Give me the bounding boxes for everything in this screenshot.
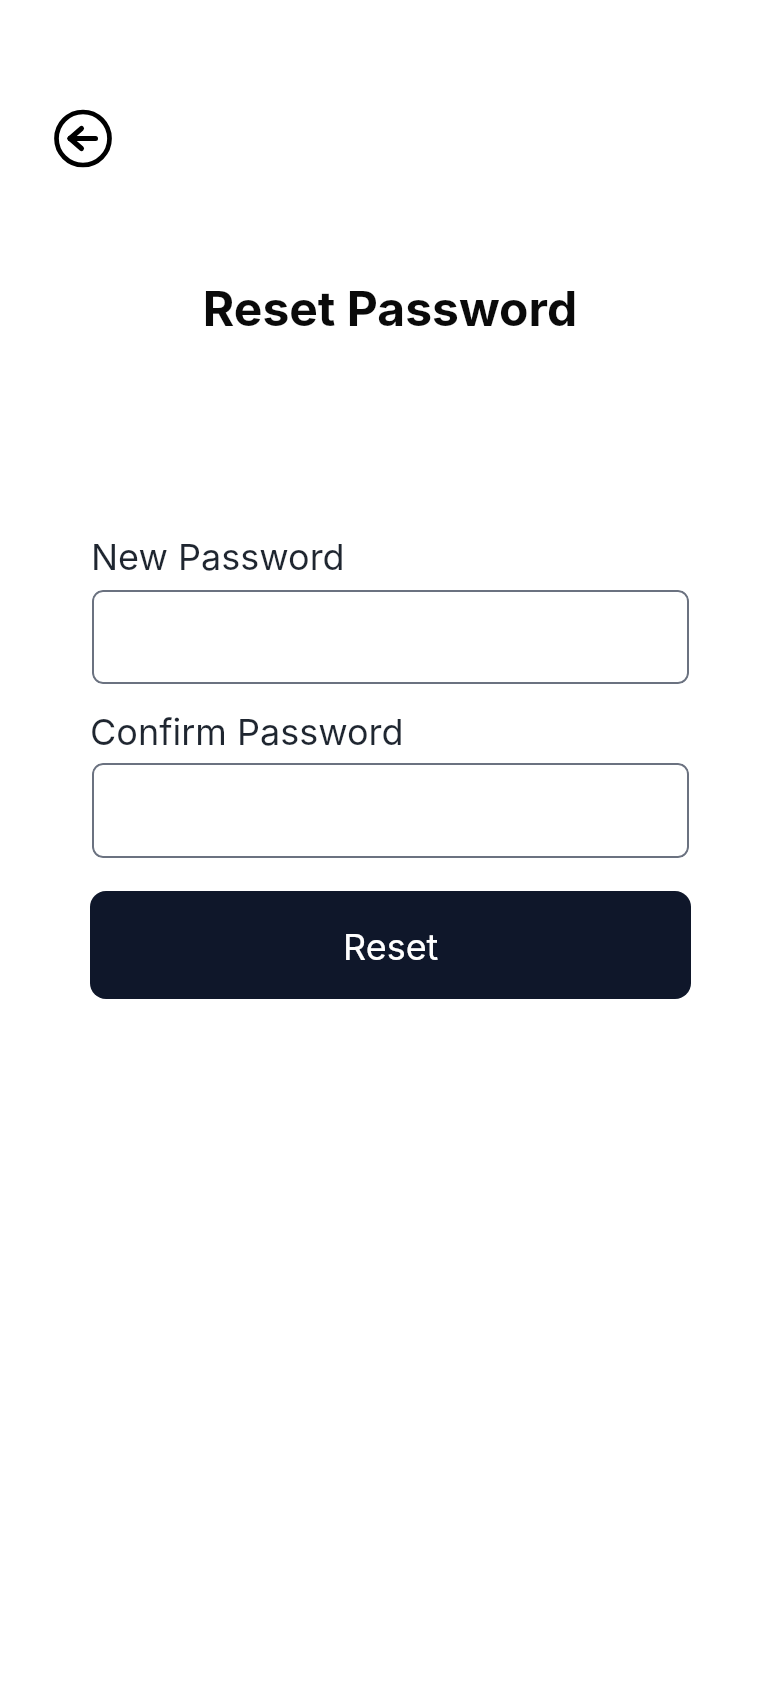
button[interactable] (54, 109, 113, 168)
staticText: New Password (91, 535, 345, 579)
button[interactable] (92, 763, 689, 858)
staticText: Confirm Password (90, 710, 404, 754)
button[interactable]: Reset (90, 891, 691, 999)
button[interactable] (92, 590, 689, 684)
staticText: Reset (343, 925, 439, 969)
staticText: Reset Password (0, 279, 780, 337)
